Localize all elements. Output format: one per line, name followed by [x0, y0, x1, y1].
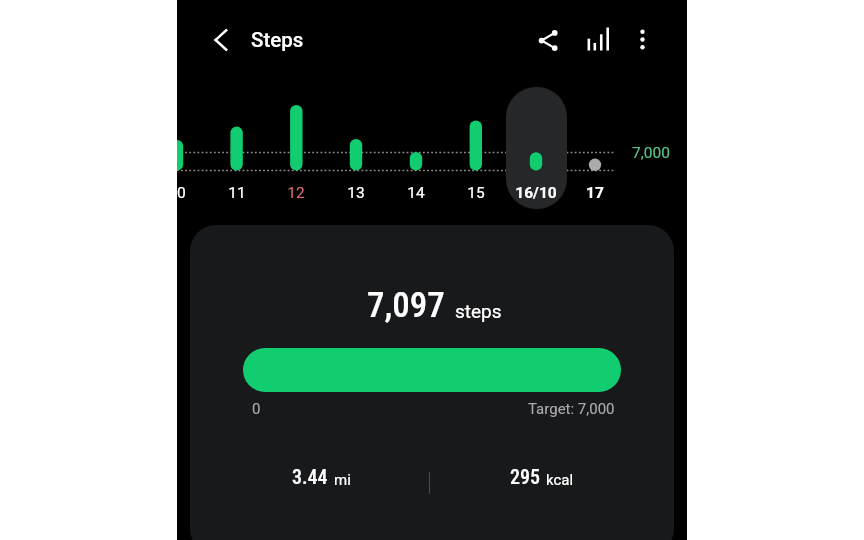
button[interactable]: More options	[619, 16, 665, 62]
staticText: Target: 7,000	[528, 400, 615, 418]
staticText: 7,097	[367, 285, 445, 326]
staticText: steps	[455, 300, 502, 322]
staticText: 295	[510, 465, 540, 488]
button[interactable]: Steps	[247, 21, 300, 51]
staticText: 15	[441, 184, 511, 202]
button[interactable]: Step progress 7097 of 7000	[243, 348, 621, 392]
staticText: Steps	[251, 28, 304, 52]
staticText: kcal	[546, 471, 574, 489]
staticText: 10	[177, 184, 212, 202]
button[interactable]: Selected day 16/10	[506, 87, 567, 209]
button[interactable]: 17	[560, 184, 630, 202]
button[interactable]: 13	[321, 184, 391, 202]
staticText: 13	[321, 184, 391, 202]
button[interactable]: Back	[203, 22, 239, 58]
button[interactable]: View chart	[575, 17, 621, 63]
staticText: 16/10	[501, 184, 571, 202]
button[interactable]: 14	[381, 184, 451, 202]
staticText: 7,000	[632, 144, 670, 162]
staticText: 14	[381, 184, 451, 202]
staticText: 17	[560, 184, 630, 202]
button[interactable]: 10	[177, 184, 212, 202]
button[interactable]: 12	[261, 184, 331, 202]
button[interactable]: Share	[525, 17, 571, 63]
staticText: 11	[202, 184, 272, 202]
button[interactable]: 11	[202, 184, 272, 202]
staticText: mi	[334, 471, 351, 489]
button[interactable]: 16/10	[501, 184, 571, 202]
staticText: 3.44	[292, 465, 328, 488]
staticText: 0	[252, 400, 261, 418]
staticText: 12	[261, 184, 331, 202]
button[interactable]: 7,097	[190, 225, 674, 540]
button[interactable]: 15	[441, 184, 511, 202]
